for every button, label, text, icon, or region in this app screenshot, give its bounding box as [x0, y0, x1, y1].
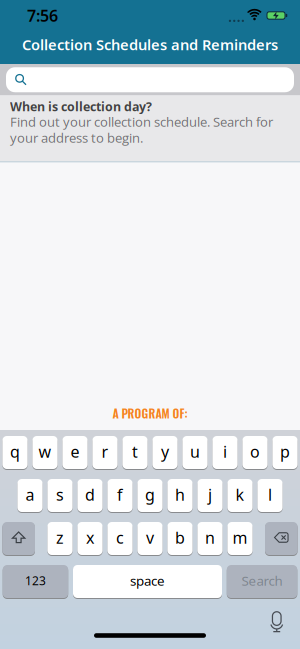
button[interactable]: d — [77, 478, 103, 512]
staticText: p — [280, 441, 290, 462]
button[interactable]: y — [152, 435, 178, 469]
button[interactable]: l — [257, 478, 283, 512]
button[interactable]: x — [77, 521, 103, 555]
button[interactable]: 123 — [3, 564, 68, 598]
staticText: d — [85, 484, 95, 505]
button[interactable]: z — [47, 521, 73, 555]
button[interactable]: v — [137, 521, 163, 555]
button[interactable]: Delete — [265, 521, 298, 555]
button[interactable]: p — [272, 435, 298, 469]
staticText: c — [116, 527, 124, 548]
button[interactable]: Search — [0, 67, 300, 92]
staticText: u — [190, 441, 200, 462]
button[interactable]: w — [32, 435, 58, 469]
staticText: Find out your collection schedule. Searc… — [10, 113, 273, 131]
button[interactable]: t — [122, 435, 148, 469]
button[interactable]: o — [242, 435, 268, 469]
staticText: Collection Schedules and Reminders — [22, 35, 278, 54]
button[interactable]: r — [92, 435, 118, 469]
button[interactable]: space — [73, 564, 222, 598]
staticText: space — [130, 572, 165, 589]
button[interactable]: Search — [227, 564, 297, 598]
staticText: i — [223, 441, 227, 462]
staticText: s — [56, 484, 64, 505]
staticText: 123 — [25, 572, 46, 588]
staticText: j — [208, 484, 212, 505]
staticText: z — [56, 527, 64, 548]
staticText: A PROGRAM OF: — [112, 405, 187, 422]
staticText: Search — [242, 572, 283, 589]
staticText: o — [250, 441, 260, 462]
button[interactable]: k — [227, 478, 253, 512]
button[interactable]: e — [62, 435, 88, 469]
staticText: a — [25, 484, 34, 505]
button[interactable]: q — [2, 435, 28, 469]
staticText: h — [175, 484, 185, 505]
staticText: k — [235, 484, 244, 505]
button[interactable]: j — [197, 478, 223, 512]
button[interactable]: g — [137, 478, 163, 512]
staticText: your address to begin. — [10, 129, 143, 146]
button[interactable]: c — [107, 521, 133, 555]
staticText: e — [70, 441, 79, 462]
staticText: v — [146, 527, 154, 548]
button[interactable]: f — [107, 478, 133, 512]
staticText: When is collection day? — [10, 98, 152, 115]
button[interactable]: n — [197, 521, 223, 555]
staticText: y — [161, 441, 169, 462]
staticText: 7:56 — [27, 5, 58, 26]
staticText: b — [175, 527, 185, 548]
button[interactable]: i — [212, 435, 238, 469]
staticText: w — [38, 441, 51, 462]
staticText: l — [268, 484, 272, 505]
staticText: f — [117, 484, 123, 505]
staticText: g — [145, 484, 155, 505]
button[interactable]: b — [167, 521, 193, 555]
staticText: q — [10, 441, 20, 462]
staticText: r — [101, 441, 108, 462]
staticText: x — [86, 527, 94, 548]
button[interactable]: a — [17, 478, 43, 512]
button[interactable]: u — [182, 435, 208, 469]
staticText: n — [205, 527, 215, 548]
button[interactable]: m — [227, 521, 253, 555]
staticText: m — [232, 527, 247, 548]
button[interactable]: Shift — [2, 521, 35, 555]
button[interactable]: Dictation — [270, 612, 300, 632]
staticText: t — [132, 441, 138, 462]
button[interactable]: s — [47, 478, 73, 512]
button[interactable]: h — [167, 478, 193, 512]
